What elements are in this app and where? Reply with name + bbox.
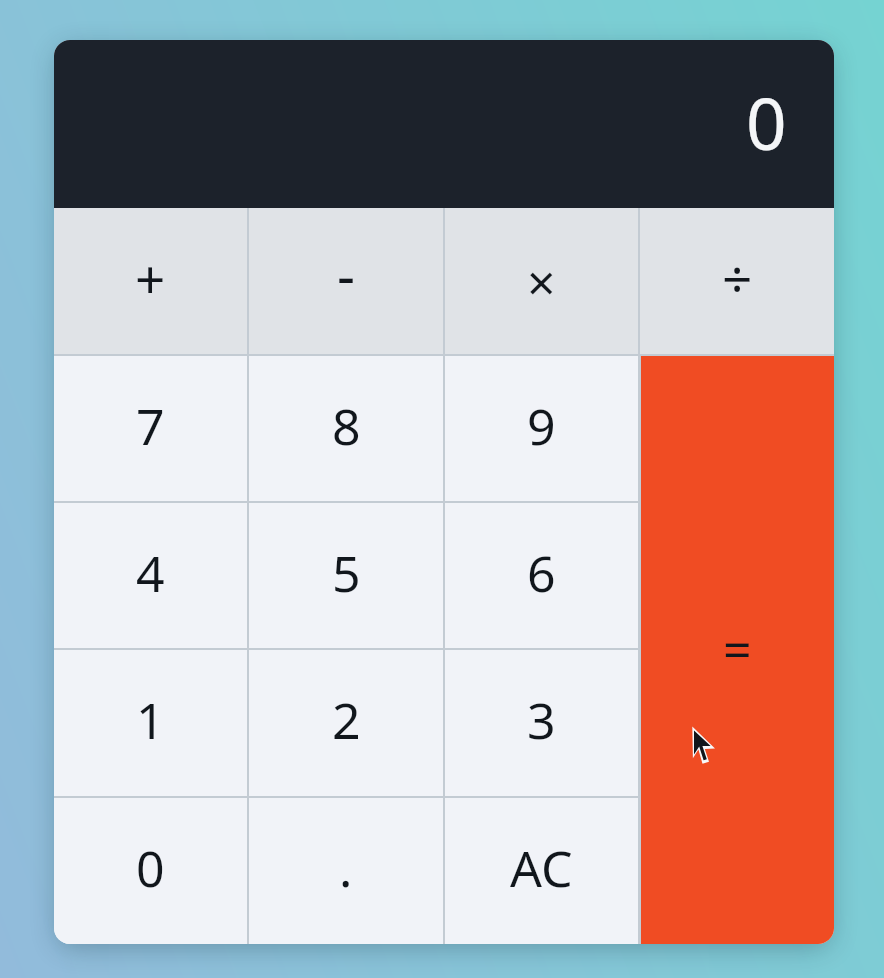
button[interactable]: 1 bbox=[54, 650, 247, 796]
button[interactable]: 4 bbox=[54, 503, 247, 648]
button[interactable]: 5 bbox=[249, 503, 443, 648]
staticText: 7 bbox=[136, 392, 165, 460]
staticText: = bbox=[723, 615, 752, 683]
staticText: 2 bbox=[332, 686, 361, 754]
button[interactable]: Divide bbox=[640, 208, 834, 354]
button[interactable]: 8 bbox=[249, 356, 443, 501]
button[interactable]: AC bbox=[445, 798, 638, 944]
button[interactable]: . bbox=[249, 798, 443, 944]
staticText: 0 bbox=[746, 74, 787, 171]
staticText: 1 bbox=[136, 686, 165, 754]
button[interactable]: = bbox=[641, 356, 834, 944]
button[interactable]: 9 bbox=[445, 356, 638, 501]
button[interactable]: Subtract bbox=[249, 208, 443, 354]
staticText: - bbox=[337, 236, 356, 312]
staticText: × bbox=[527, 248, 556, 316]
button[interactable]: 6 bbox=[445, 503, 638, 648]
staticText: 6 bbox=[527, 539, 556, 607]
staticText: ÷ bbox=[722, 241, 753, 313]
staticText: 4 bbox=[136, 539, 165, 607]
staticText: 3 bbox=[527, 686, 556, 754]
button[interactable]: 7 bbox=[54, 356, 247, 501]
staticText: 0 bbox=[136, 834, 165, 902]
staticText: 5 bbox=[332, 539, 361, 607]
button[interactable]: Multiply bbox=[445, 208, 638, 354]
staticText: 8 bbox=[332, 392, 361, 460]
staticText: + bbox=[135, 242, 166, 314]
staticText: . bbox=[339, 834, 353, 902]
button[interactable]: Add bbox=[54, 208, 247, 354]
staticText: AC bbox=[510, 834, 573, 902]
staticText: 9 bbox=[527, 392, 556, 460]
button[interactable]: 3 bbox=[445, 650, 638, 796]
button[interactable]: 0 bbox=[54, 798, 247, 944]
button[interactable]: 2 bbox=[249, 650, 443, 796]
